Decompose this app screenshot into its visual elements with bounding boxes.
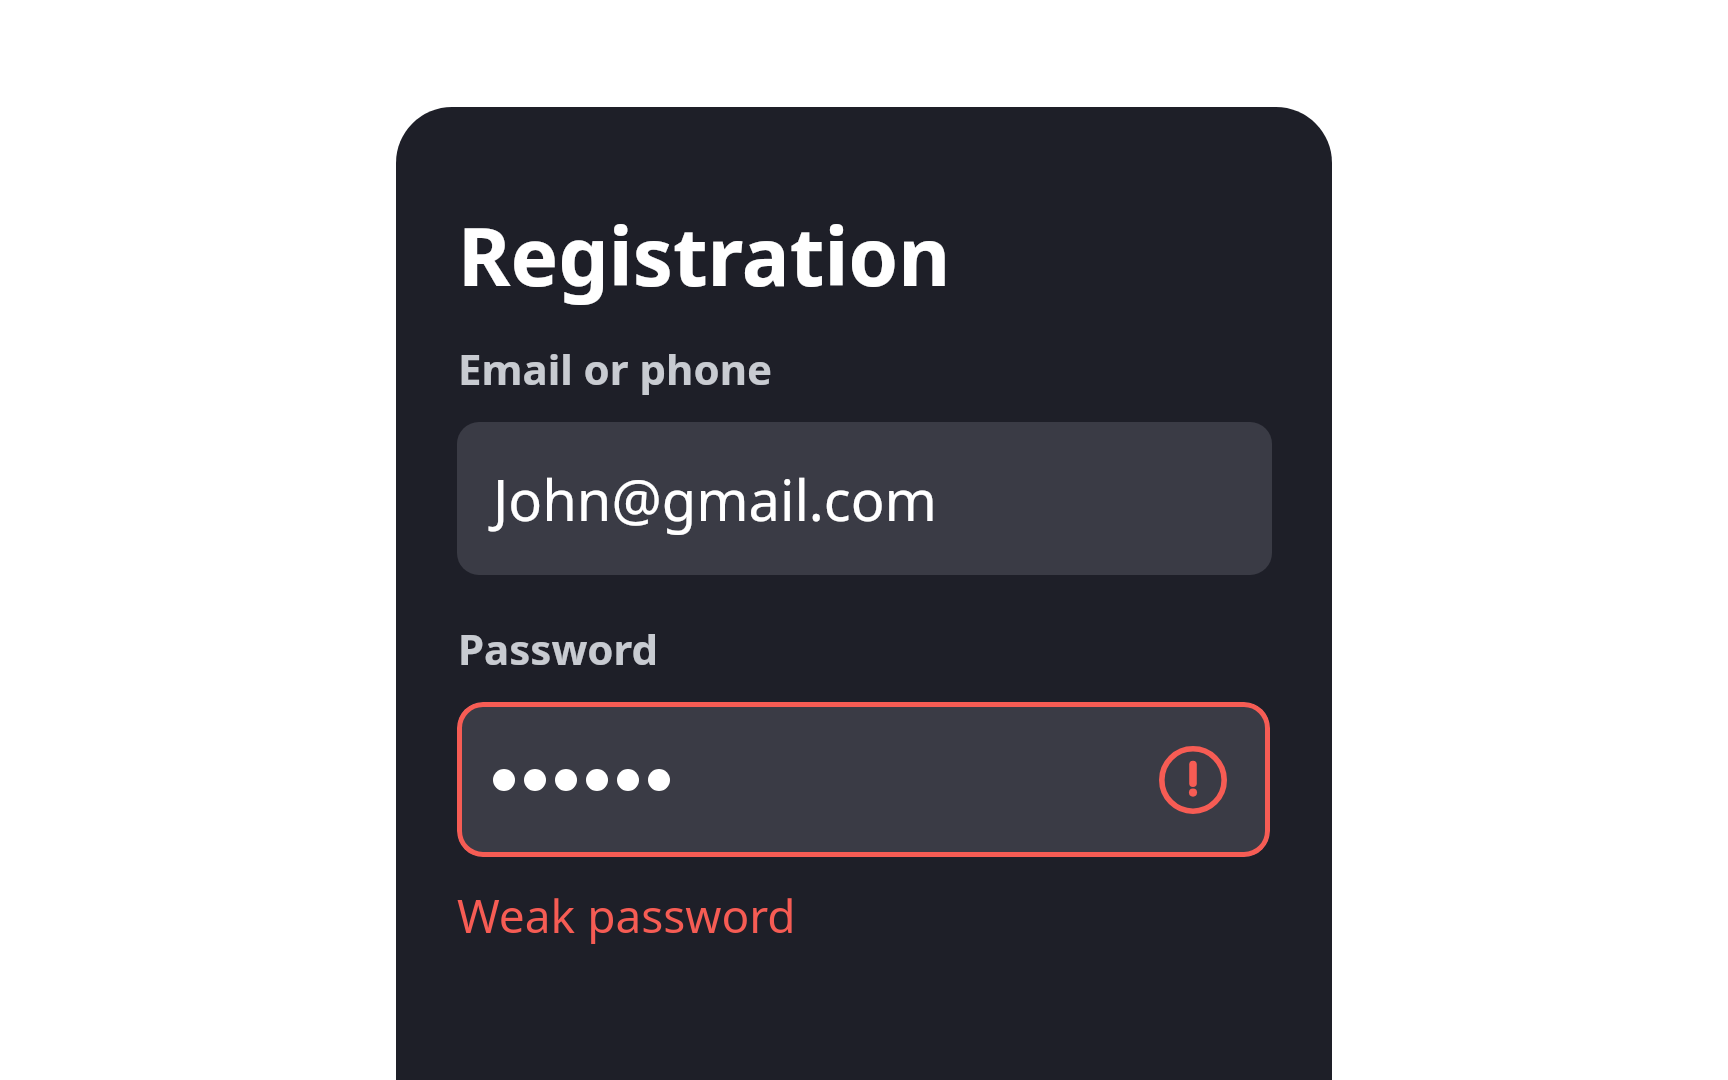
staticText: Weak password <box>457 884 796 947</box>
staticText: Email or phone <box>458 340 773 397</box>
staticText: Registration <box>458 200 951 309</box>
button[interactable]: Password error <box>457 702 1270 857</box>
button[interactable]: Password error <box>1157 744 1229 816</box>
staticText: John@gmail.com <box>493 461 937 537</box>
staticText: Password <box>458 620 659 677</box>
button[interactable]: John@gmail.com <box>457 422 1272 575</box>
